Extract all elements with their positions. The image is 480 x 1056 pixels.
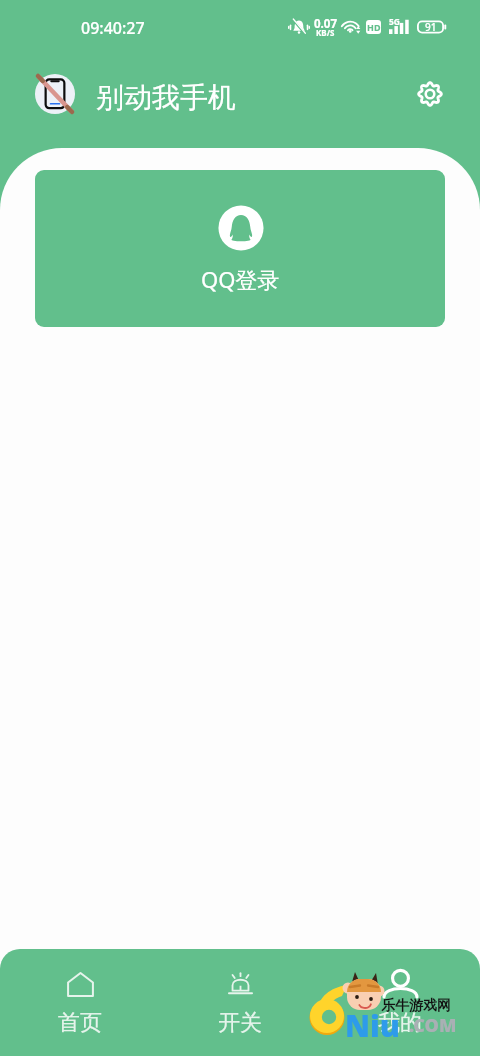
staticText: 开关 [218,1009,262,1037]
button[interactable]: 首页 [0,949,160,1037]
button[interactable]: 我的 [320,949,480,1037]
staticText: 首页 [58,1009,102,1037]
staticText: QQ登录 [201,264,280,294]
staticText: 91 [425,20,437,34]
staticText: 5G [389,16,401,28]
staticText: 0.07 [314,16,337,32]
staticText: .COM [409,1013,457,1038]
staticText: KB/S [316,27,335,38]
staticText: 我的 [378,1009,422,1037]
button[interactable]: QQ登录 [35,170,445,327]
button[interactable]: 开关 [160,949,320,1037]
staticText: HD [367,21,381,33]
button[interactable]: Settings [408,72,452,116]
staticText: Niu [345,1005,400,1046]
staticText: 别动我手机 [96,80,236,115]
staticText: 09:40:27 [81,17,145,39]
staticText: 乐牛游戏网 [381,997,451,1015]
